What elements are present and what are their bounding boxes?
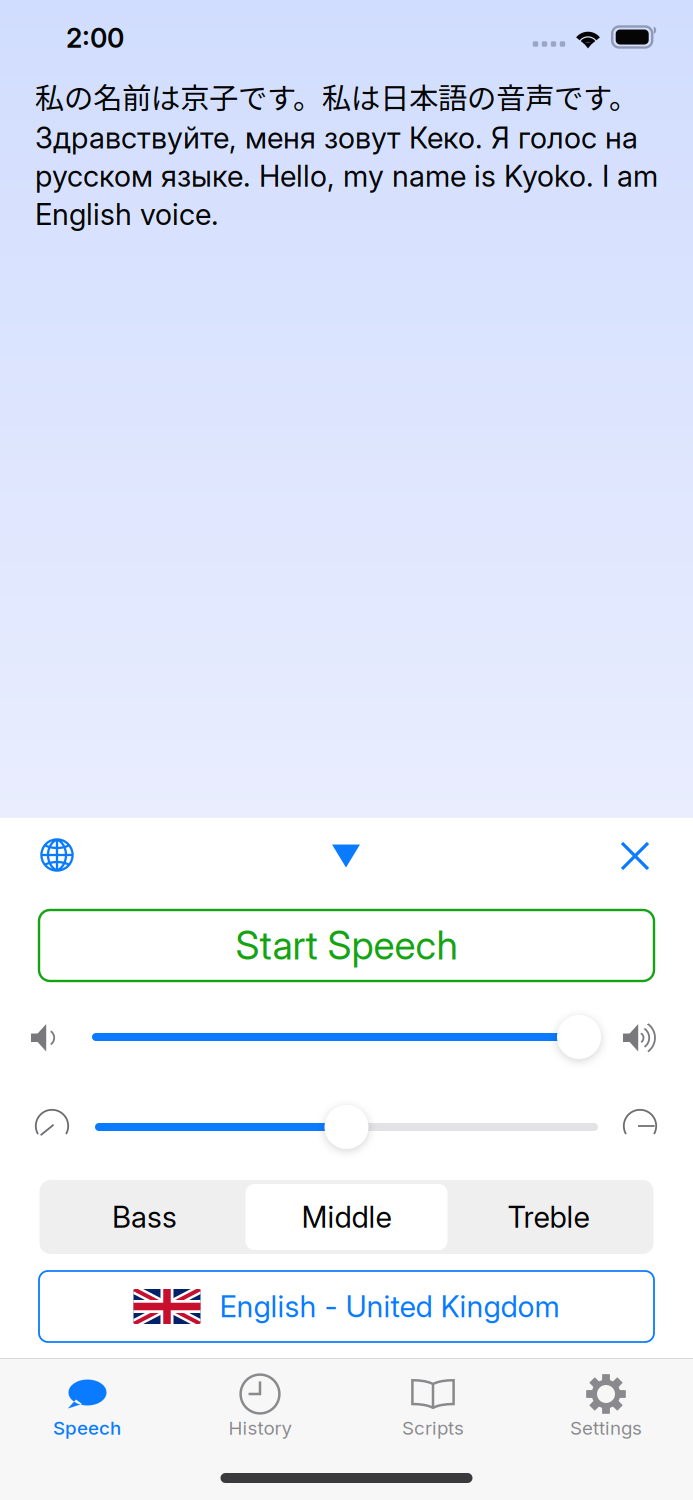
staticText: Speech	[53, 1417, 121, 1439]
staticText: History	[228, 1417, 291, 1439]
button[interactable]: Hide controls	[310, 828, 382, 883]
button[interactable]: Settings	[519, 1361, 692, 1451]
staticText: Middle	[301, 1199, 391, 1235]
staticText: Bass	[112, 1199, 177, 1235]
button[interactable]: History	[173, 1361, 346, 1451]
button[interactable]: Bass	[43, 1184, 245, 1250]
staticText: Treble	[507, 1199, 589, 1235]
staticText: Scripts	[402, 1417, 464, 1439]
staticText: 私の名前は京子です。私は日本語の音声です。Здравствуйте, меня …	[35, 75, 658, 232]
staticText: Settings	[570, 1417, 642, 1439]
button[interactable]: Treble	[447, 1184, 649, 1250]
button[interactable]: Speech	[0, 1361, 173, 1451]
button[interactable]: Scripts	[346, 1361, 519, 1451]
button[interactable]: Start Speech	[39, 910, 654, 981]
staticText: English - United Kingdom	[219, 1289, 559, 1324]
button[interactable]: Language	[28, 826, 86, 884]
staticText: 2:00	[66, 22, 124, 54]
button[interactable]: English - United Kingdom	[39, 1271, 654, 1342]
staticText: Start Speech	[235, 922, 457, 969]
button[interactable]: Close	[608, 829, 662, 883]
button[interactable]: Middle	[245, 1184, 447, 1250]
